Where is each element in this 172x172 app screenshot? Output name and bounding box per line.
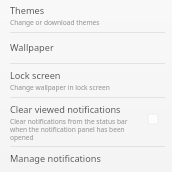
staticText: Change or download themes (10, 18, 100, 27)
staticText: Change wallpaper in lock screen (10, 83, 110, 92)
button[interactable]: Wallpaper (0, 33, 172, 63)
staticText: Wallpaper (10, 41, 54, 54)
staticText: Clear viewed notifications (10, 103, 121, 116)
button[interactable]: Lock screen (0, 64, 172, 97)
staticText: Themes (10, 4, 45, 17)
staticText: Manage notifications (10, 152, 101, 165)
button[interactable]: Themes (0, 2, 172, 32)
staticText: Lock screen (10, 69, 61, 82)
button[interactable]: Clear viewed notifications toggle (147, 113, 158, 124)
staticText: Clear notifications from the status bar … (10, 117, 143, 142)
button[interactable]: Clear viewed notifications (0, 98, 172, 146)
button[interactable]: Manage notifications (0, 147, 172, 172)
